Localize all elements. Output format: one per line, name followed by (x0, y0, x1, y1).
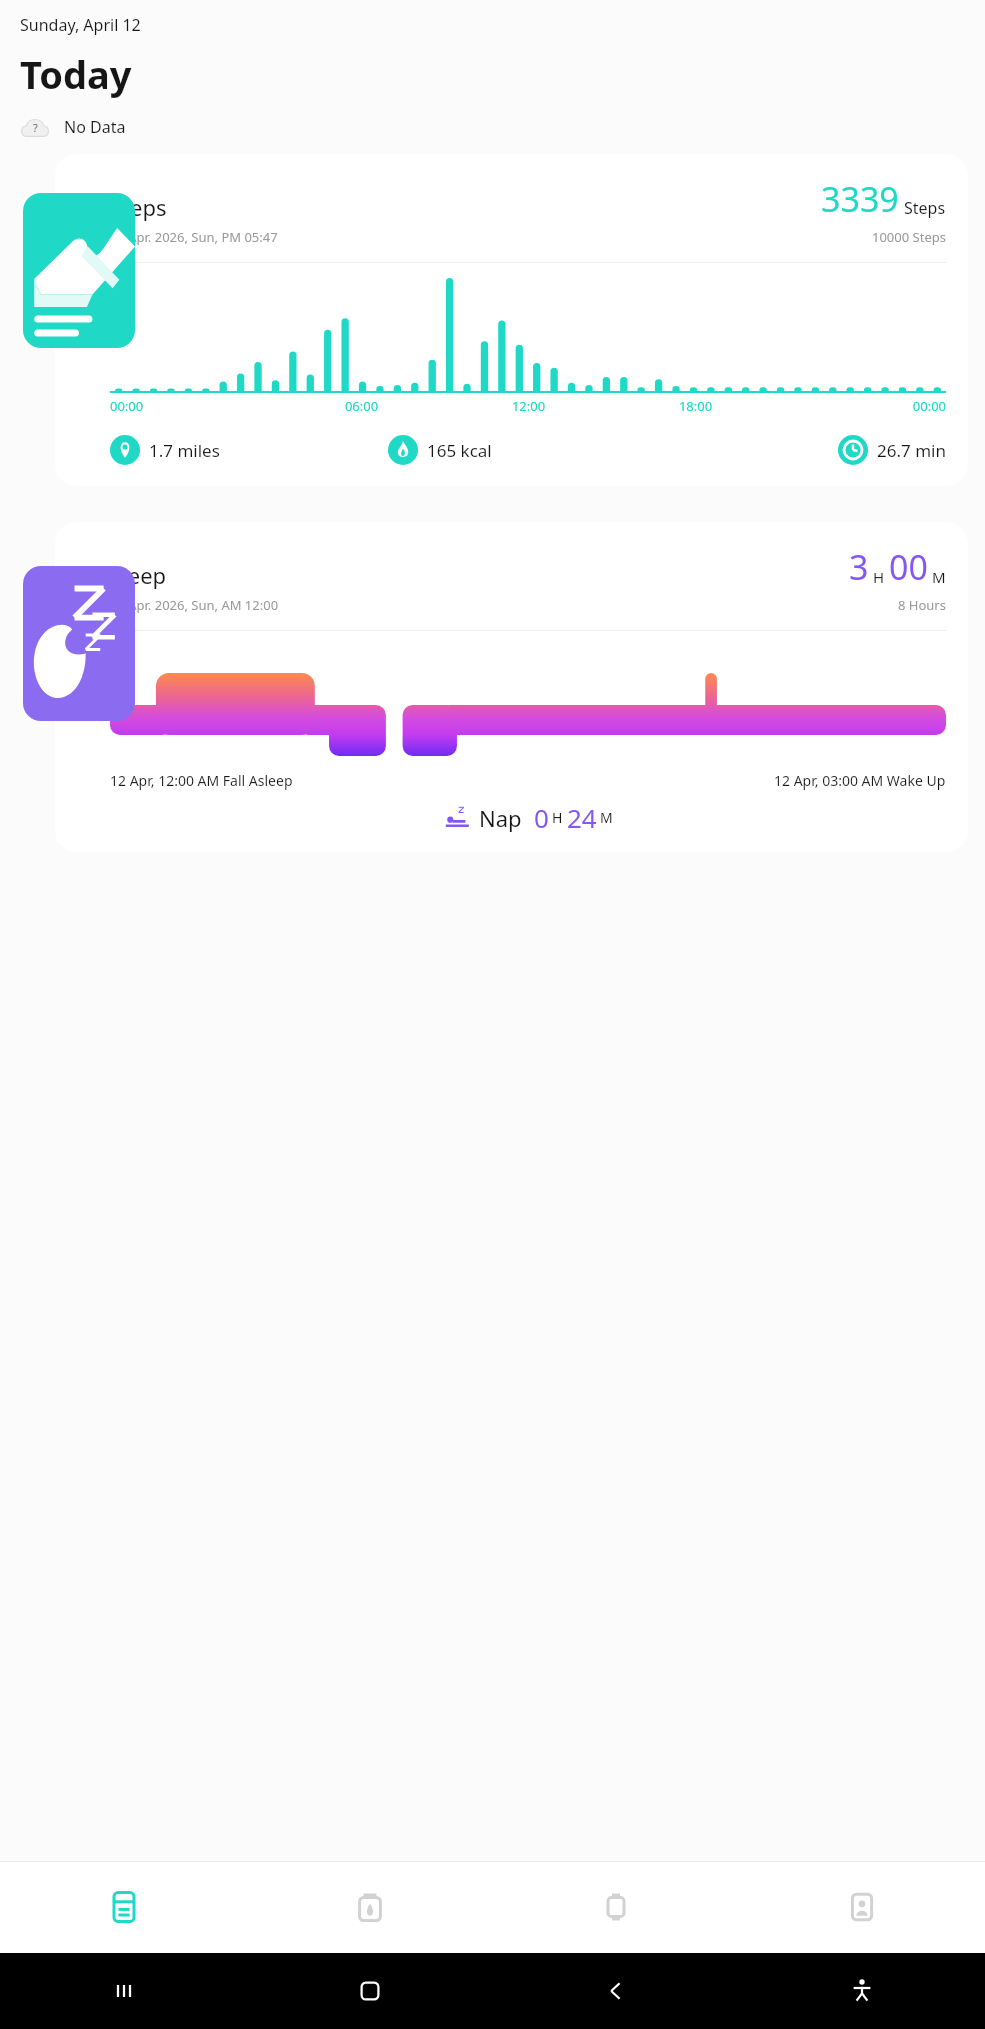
staticText: H (873, 567, 885, 587)
button[interactable]: Accessibility (739, 1953, 985, 2029)
button[interactable]: ? (20, 114, 126, 140)
staticText: 00 (889, 544, 928, 590)
button[interactable]: Sleep (55, 522, 968, 852)
button[interactable]: Profile (739, 1861, 985, 1953)
staticText: ? (33, 120, 38, 135)
staticText: 00:00 (110, 397, 278, 415)
staticText: M (932, 567, 946, 587)
staticText: Steps (904, 197, 946, 219)
staticText: 12:00 (445, 397, 612, 415)
staticText: 18:00 (612, 397, 779, 415)
staticText: 06:00 (278, 397, 445, 415)
staticText: 10000 Steps (872, 228, 946, 246)
button[interactable]: Sleep (23, 566, 135, 721)
staticText: Steps (110, 192, 167, 222)
staticText: M (600, 808, 613, 827)
button[interactable]: Steps (55, 154, 968, 486)
staticText: 3339 (821, 176, 899, 222)
button[interactable]: Home (0, 1861, 247, 1953)
staticText: 1.7 miles (149, 439, 220, 462)
staticText: 12 Apr. 2026, Sun, AM 12:00 (110, 596, 279, 614)
button[interactable]: Together (247, 1861, 493, 1953)
button[interactable]: 165 kcal (388, 435, 667, 465)
button[interactable]: Devices (493, 1861, 739, 1953)
staticText: Sunday, April 12 (20, 14, 141, 36)
staticText: No Data (64, 116, 126, 138)
staticText: 12 Apr, 12:00 AM Fall Asleep (110, 771, 293, 790)
staticText: 26.7 min (877, 439, 946, 462)
staticText: 3 (849, 544, 869, 590)
staticText: 12 Apr, 03:00 AM Wake Up (774, 771, 946, 790)
staticText: Nap (479, 803, 522, 833)
button[interactable]: Back (493, 1953, 739, 2029)
staticText: 165 kcal (427, 439, 492, 462)
button[interactable]: 26.7 min (667, 435, 946, 465)
button[interactable]: Steps (23, 193, 135, 348)
staticText: 8 Hours (898, 596, 946, 614)
staticText: 00:00 (779, 397, 946, 415)
button[interactable]: 1.7 miles (110, 435, 388, 465)
staticText: 0 (534, 800, 549, 835)
staticText: 24 (567, 800, 597, 835)
staticText: 12 Apr. 2026, Sun, PM 05:47 (110, 228, 278, 246)
staticText: Sleep (110, 560, 167, 590)
staticText: Today (20, 48, 132, 100)
button[interactable]: Recents (0, 1953, 247, 2029)
button[interactable]: Home (247, 1953, 493, 2029)
staticText: H (552, 808, 563, 827)
